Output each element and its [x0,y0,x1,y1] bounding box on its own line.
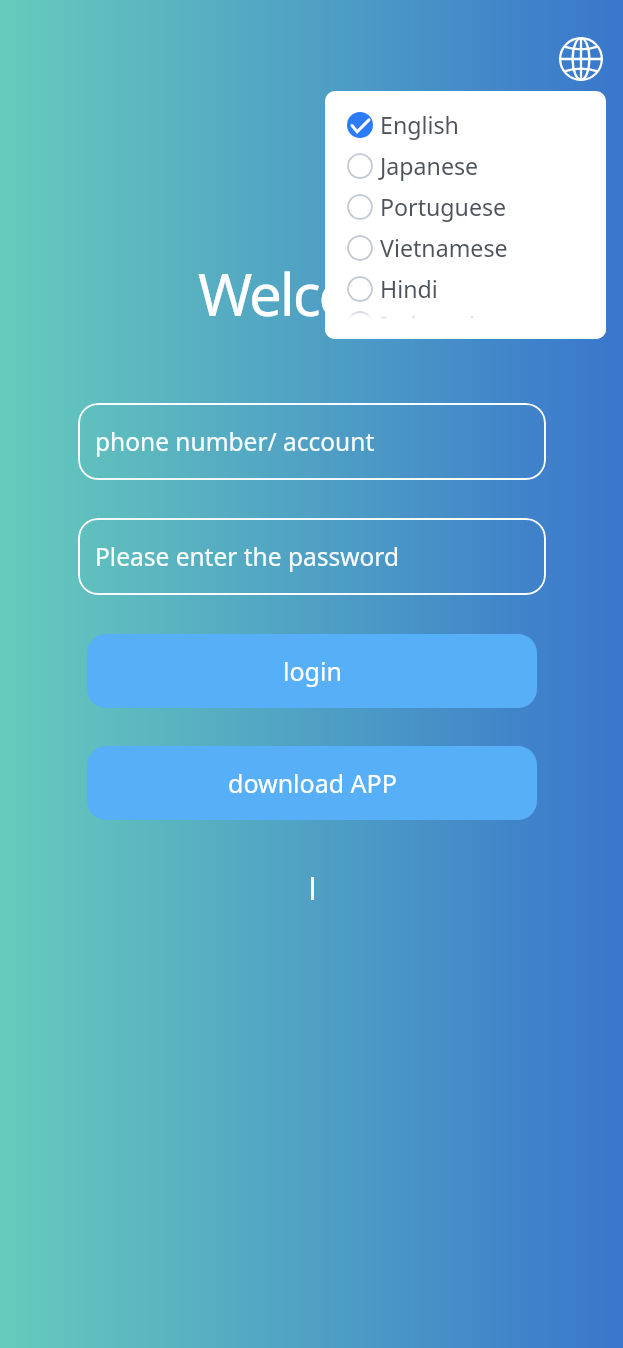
button[interactable]: Hindi [325,268,606,309]
staticText: download APP [228,766,397,800]
staticText: English [380,109,459,141]
button[interactable]: download APP [87,746,537,820]
button[interactable]: Vietnamese [325,227,606,268]
button[interactable]: Portuguese [325,186,606,227]
staticText: login [283,654,342,688]
button[interactable]: Indonesian [325,309,606,339]
staticText: Vietnamese [380,232,508,264]
staticText: phone number/ account [95,425,375,458]
staticText: Hindi [380,273,438,305]
staticText: Japanese [380,150,479,182]
staticText: Welcome [198,253,436,333]
button[interactable]: Japanese [325,145,606,186]
staticText: Please enter the password [95,540,399,573]
button[interactable]: login [87,634,537,708]
button[interactable]: Please enter the password [78,518,546,595]
button[interactable]: phone number/ account [78,403,546,480]
button[interactable]: Change language [552,30,609,87]
staticText: Portuguese [380,191,507,223]
button[interactable]: English [325,104,606,145]
